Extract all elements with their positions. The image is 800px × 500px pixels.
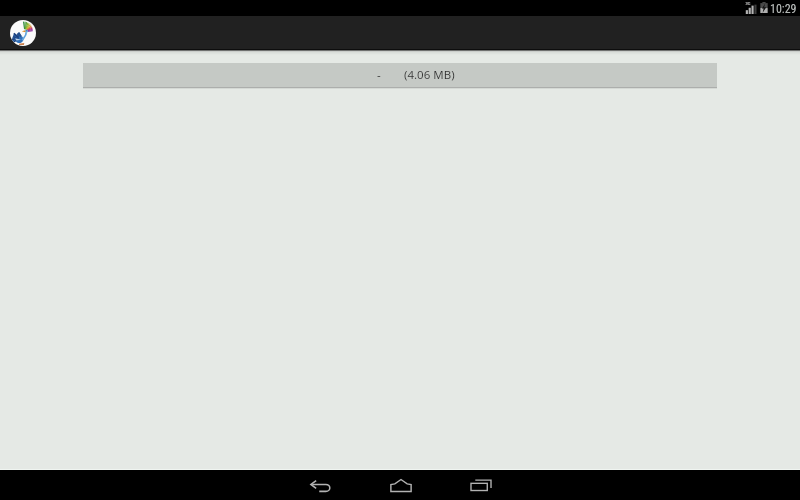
button[interactable]: App icon — [10, 20, 36, 46]
button[interactable]: Home — [361, 470, 441, 500]
button[interactable]: - — [83, 63, 717, 87]
button[interactable]: Recent apps — [441, 470, 521, 500]
button[interactable]: Back — [281, 470, 361, 500]
staticText: 10:29 — [770, 2, 797, 16]
staticText: - — [377, 67, 381, 83]
staticText: (4.06 MB) — [404, 67, 455, 83]
